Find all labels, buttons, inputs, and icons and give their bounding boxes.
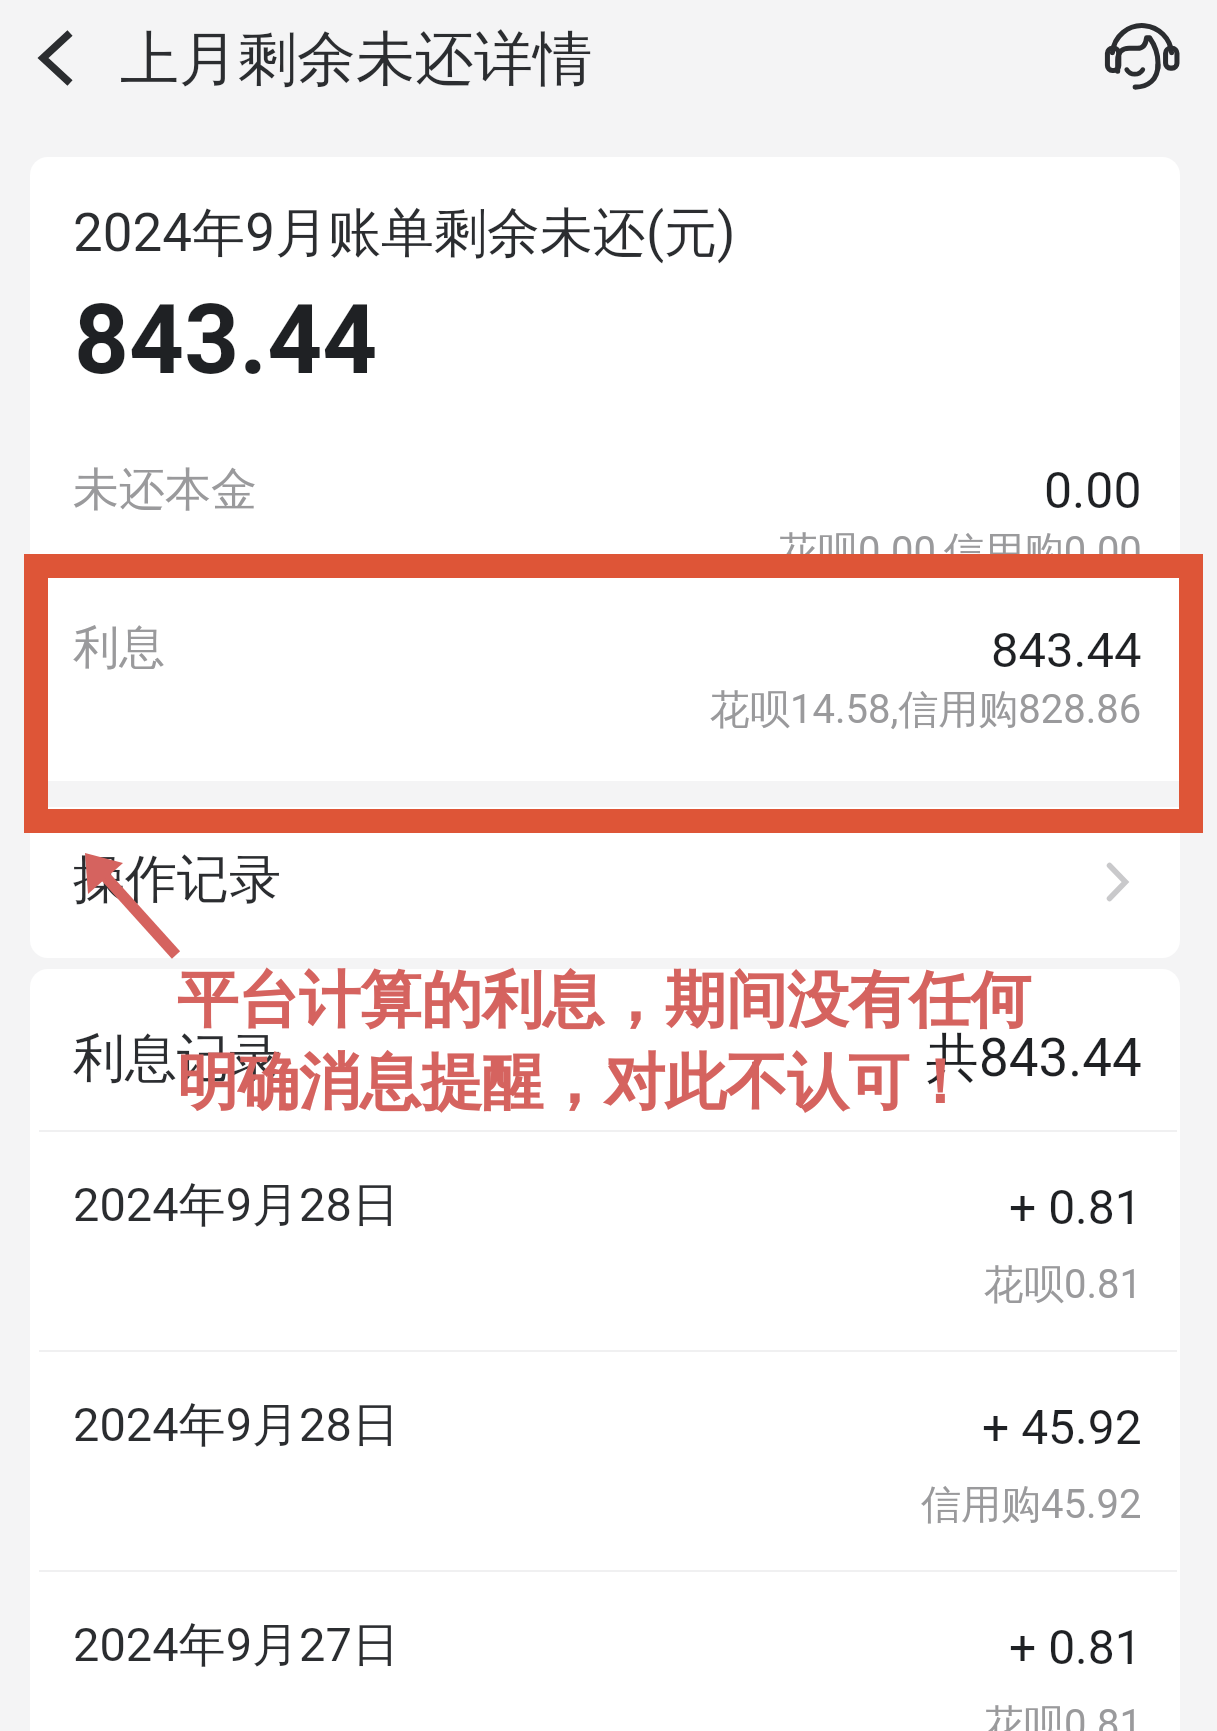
button[interactable]: 2024年9月28日 — [30, 1132, 1180, 1350]
staticText: 2024年9月账单剩余未还(元) — [73, 200, 736, 267]
staticText: 2024年9月28日 — [73, 1396, 399, 1455]
staticText: 上月剩余未还详情 — [120, 22, 592, 96]
staticText: 利息记录 — [73, 1026, 281, 1092]
button[interactable] — [30, 437, 1180, 597]
button[interactable] — [30, 595, 1180, 755]
staticText: 利息 — [73, 619, 165, 677]
staticText: 花呗0.00,信用购0.00 — [778, 526, 1142, 576]
staticText: + 45.92 — [982, 1399, 1142, 1455]
button[interactable]: 2024年9月28日 — [30, 1352, 1180, 1570]
staticText: 843.44 — [991, 622, 1142, 679]
staticText: 操作记录 — [73, 847, 281, 913]
staticText: 共843.44 — [926, 1025, 1142, 1092]
staticText: 2024年9月27日 — [73, 1616, 399, 1675]
button[interactable]: Customer service — [1095, 13, 1189, 107]
staticText: 信用购45.92 — [921, 1479, 1142, 1529]
staticText: 花呗0.81 — [984, 1699, 1142, 1731]
staticText: 843.44 — [74, 284, 378, 397]
staticText: 花呗14.58,信用购828.86 — [710, 684, 1142, 734]
button[interactable]: Back — [11, 18, 101, 98]
staticText: + 0.81 — [1009, 1179, 1142, 1235]
staticText: + 0.81 — [1009, 1619, 1142, 1675]
staticText: 未还本金 — [73, 461, 257, 519]
staticText: 0.00 — [1044, 462, 1142, 521]
button[interactable]: 2024年9月27日 — [30, 1572, 1180, 1731]
button[interactable]: 操作记录 — [30, 829, 1180, 958]
staticText: 平台计算的利息，期间没有任何 — [177, 962, 1031, 1039]
staticText: 花呗0.81 — [984, 1259, 1142, 1309]
staticText: 明确消息提醒，对此不认可！ — [177, 1044, 970, 1121]
staticText: 2024年9月28日 — [73, 1176, 399, 1235]
